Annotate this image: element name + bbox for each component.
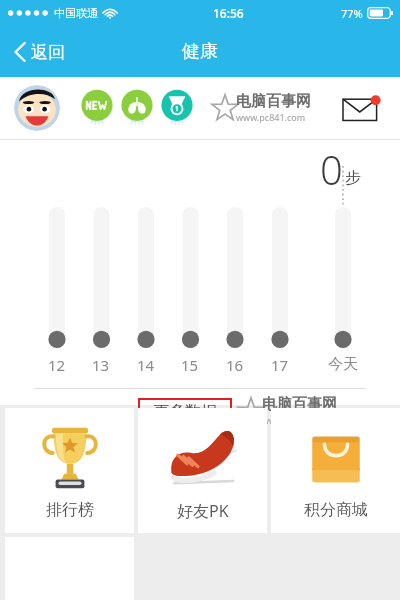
- staticText: 16: [226, 355, 244, 375]
- button[interactable]: 积分商城: [271, 408, 400, 533]
- button[interactable]: 更多数据: [138, 398, 232, 426]
- button[interactable]: Medal badge: [158, 89, 196, 127]
- button[interactable]: Profile avatar: [14, 85, 60, 131]
- staticText: 16:56: [213, 5, 244, 21]
- staticText: 好友PK: [177, 500, 229, 522]
- staticText: 13: [92, 355, 110, 375]
- staticText: 电脑百事网: [236, 92, 311, 111]
- staticText: 今天: [328, 355, 358, 374]
- staticText: 15: [181, 355, 199, 375]
- staticText: 12: [48, 355, 66, 375]
- staticText: 77%: [341, 6, 363, 21]
- button[interactable]: Messages: [343, 95, 385, 123]
- staticText: www.pc841.com: [262, 414, 332, 426]
- staticText: 0: [320, 142, 343, 196]
- staticText: 更多数据: [153, 402, 217, 422]
- staticText: www.pc841.com: [236, 111, 306, 123]
- staticText: 健康: [182, 40, 218, 63]
- button[interactable]: Lung health badge: [118, 89, 156, 127]
- button[interactable]: New badge: [78, 89, 116, 127]
- staticText: 电脑百事网: [262, 395, 337, 414]
- staticText: 14: [137, 355, 155, 375]
- button[interactable]: 返回: [8, 35, 73, 69]
- button[interactable]: 好友PK: [138, 408, 267, 533]
- staticText: 中国联通: [54, 6, 98, 20]
- button[interactable]: 排行榜: [5, 408, 134, 533]
- staticText: 步: [345, 168, 361, 188]
- staticText: 排行榜: [46, 500, 94, 520]
- staticText: 返回: [31, 42, 65, 63]
- staticText: 积分商城: [304, 500, 368, 520]
- staticText: 17: [271, 355, 289, 375]
